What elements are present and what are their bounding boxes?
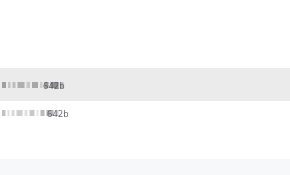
staticText: 642b (43, 79, 65, 91)
button[interactable]: Log entry 642b, selected (0, 68, 290, 101)
button[interactable]: Log entry 642b (0, 101, 290, 125)
staticText: 642b (47, 107, 69, 119)
